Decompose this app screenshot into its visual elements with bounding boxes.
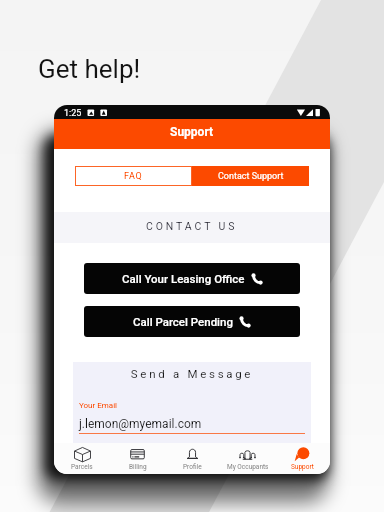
button[interactable]: Call Parcel Pending: [84, 306, 300, 337]
staticText: Your Email: [79, 401, 118, 410]
button[interactable]: My Occupants: [220, 443, 275, 474]
staticText: FAQ: [124, 171, 143, 182]
button[interactable]: Parcels: [54, 443, 110, 474]
staticText: Parcels: [71, 463, 93, 471]
staticText: Profile: [183, 463, 202, 471]
staticText: Support: [291, 463, 314, 471]
staticText: 1:25: [64, 108, 82, 119]
button[interactable]: Call Your Leasing Office: [84, 263, 300, 294]
button[interactable]: Contact Support: [192, 166, 309, 186]
staticText: My Occupants: [227, 463, 269, 471]
staticText: Support: [170, 125, 214, 139]
staticText: Get help!: [38, 54, 141, 84]
button[interactable]: Support: [275, 443, 330, 474]
staticText: CONTACT US: [146, 220, 238, 232]
button[interactable]: Billing: [110, 443, 165, 474]
staticText: Call Your Leasing Office: [122, 272, 245, 285]
staticText: Call Parcel Pending: [133, 315, 233, 328]
staticText: Send a Message: [73, 367, 311, 380]
staticText: Billing: [129, 463, 147, 471]
button[interactable]: Support: [54, 119, 330, 149]
staticText: Contact Support: [218, 171, 284, 182]
button[interactable]: Your Email: [79, 401, 305, 434]
button[interactable]: Profile: [165, 443, 220, 474]
button[interactable]: FAQ: [75, 166, 192, 186]
staticText: j.lemon@myemail.com: [79, 417, 202, 431]
